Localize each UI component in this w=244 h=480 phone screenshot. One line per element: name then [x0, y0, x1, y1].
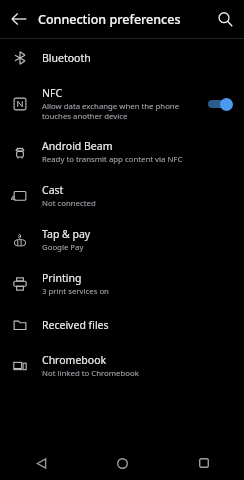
button[interactable]: NFC toggle [206, 96, 236, 112]
staticText: 3 print services on [42, 286, 109, 297]
staticText: Chromebook [42, 353, 107, 367]
button[interactable]: Received files [0, 306, 244, 344]
staticText: Tap & pay [42, 227, 91, 241]
button[interactable]: NFC [0, 77, 244, 130]
staticText: Ready to transmit app content via NFC [42, 154, 183, 165]
staticText: NFC [42, 86, 63, 100]
button[interactable]: Back [0, 0, 38, 38]
button[interactable]: Tap & pay [0, 218, 244, 262]
staticText: Google Pay [42, 242, 84, 253]
staticText: Android Beam [42, 139, 113, 153]
button[interactable]: Android Beam [0, 130, 244, 174]
button[interactable]: Bluetooth [0, 39, 244, 77]
staticText: Received files [42, 318, 109, 332]
button[interactable]: Home [82, 446, 163, 480]
button[interactable]: Printing [0, 262, 244, 306]
button[interactable]: Back [0, 446, 82, 480]
button[interactable]: Search [206, 0, 244, 38]
button[interactable]: Chromebook [0, 344, 244, 388]
staticText: Printing [42, 271, 82, 285]
staticText: Not connected [42, 198, 96, 209]
staticText: Allow data exchange when the phone touch… [42, 101, 200, 121]
button[interactable]: Cast [0, 174, 244, 218]
staticText: Bluetooth [42, 51, 91, 65]
button[interactable]: Recent apps [163, 446, 244, 480]
staticText: Connection preferences [38, 11, 181, 28]
staticText: Cast [42, 183, 64, 197]
staticText: Not linked to Chromebook [42, 368, 139, 379]
